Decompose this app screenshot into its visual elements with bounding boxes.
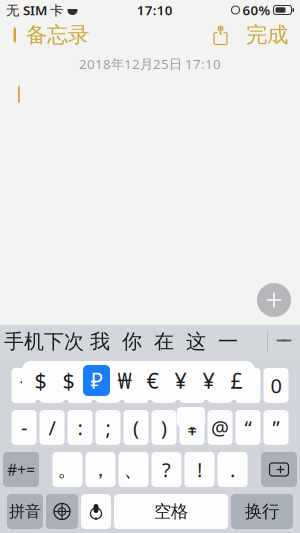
button[interactable]: 你: [116, 325, 148, 358]
button[interactable]: ，: [85, 452, 115, 487]
button[interactable]: (: [123, 410, 148, 445]
button[interactable]: #+=: [3, 452, 39, 487]
staticText: /: [48, 414, 55, 441]
staticText: 3: [74, 372, 85, 399]
staticText: 你: [122, 329, 142, 354]
staticText: 8: [214, 372, 225, 399]
button[interactable]: 完成: [237, 17, 297, 53]
button[interactable]: ₩: [111, 365, 138, 396]
button[interactable]: :: [67, 410, 92, 445]
staticText: ¥: [174, 366, 186, 395]
staticText: ”: [272, 414, 279, 441]
button[interactable]: 一: [212, 325, 244, 358]
button[interactable]: 。: [52, 452, 82, 487]
staticText: ¥: [186, 414, 197, 441]
button[interactable]: €: [139, 365, 166, 396]
staticText: 一: [218, 329, 238, 354]
button[interactable]: 收起候选: [268, 325, 300, 358]
button[interactable]: 删除: [261, 452, 297, 487]
button[interactable]: /: [39, 410, 64, 445]
staticText: ₽: [90, 366, 102, 395]
button[interactable]: 3: [67, 368, 92, 403]
button[interactable]: 新增: [252, 278, 296, 322]
staticText: 完成: [246, 22, 288, 48]
button[interactable]: !: [184, 452, 214, 487]
staticText: 4: [102, 372, 113, 399]
staticText: 这: [186, 329, 206, 354]
button[interactable]: 换行: [231, 494, 293, 529]
button[interactable]: ”: [263, 410, 288, 445]
button[interactable]: 在: [148, 325, 180, 358]
button[interactable]: 手机: [4, 325, 44, 358]
staticText: 。: [57, 457, 77, 482]
button[interactable]: 9: [235, 368, 260, 403]
button[interactable]: $: [55, 365, 82, 396]
button[interactable]: “: [235, 410, 260, 445]
button[interactable]: .: [217, 452, 247, 487]
staticText: ?: [162, 456, 171, 483]
button[interactable]: ¥: [167, 365, 194, 396]
button[interactable]: 空格: [114, 494, 228, 529]
staticText: !: [197, 456, 202, 483]
button[interactable]: ₽: [83, 365, 110, 396]
button[interactable]: 7: [179, 368, 204, 403]
staticText: 2018年12月25日 17:10: [79, 55, 221, 73]
button[interactable]: $: [27, 365, 54, 396]
staticText: €: [146, 366, 158, 395]
button[interactable]: ): [151, 410, 176, 445]
button[interactable]: 0: [263, 368, 288, 403]
button[interactable]: 分享: [204, 22, 237, 48]
button[interactable]: 我: [84, 325, 116, 358]
staticText: :: [77, 414, 82, 441]
staticText: (: [133, 414, 139, 441]
button[interactable]: 这: [180, 325, 212, 358]
button[interactable]: 2: [39, 368, 64, 403]
button[interactable]: 4: [95, 368, 120, 403]
button[interactable]: 5: [123, 368, 148, 403]
staticText: 6: [158, 372, 169, 399]
staticText: ): [161, 414, 167, 441]
staticText: $: [34, 366, 46, 395]
button[interactable]: 8: [207, 368, 232, 403]
staticText: 备忘录: [26, 22, 89, 48]
staticText: £: [230, 366, 242, 395]
button[interactable]: 6: [151, 368, 176, 403]
staticText: 空格: [154, 501, 188, 522]
button[interactable]: -: [11, 410, 36, 445]
staticText: 7: [186, 372, 197, 399]
button[interactable]: 备忘录: [3, 17, 97, 53]
button[interactable]: 、: [118, 452, 148, 487]
button[interactable]: 语音输入: [81, 494, 111, 529]
staticText: 60%: [242, 1, 270, 19]
button[interactable]: 1: [11, 368, 36, 403]
button[interactable]: 拼音: [7, 494, 43, 529]
button[interactable]: ;: [95, 410, 120, 445]
staticText: 5: [130, 372, 141, 399]
staticText: ₩: [117, 366, 131, 395]
button[interactable]: £: [223, 365, 250, 396]
staticText: 我: [90, 329, 110, 354]
staticText: 无 SIM 卡: [6, 1, 63, 19]
button[interactable]: 切换键盘: [46, 494, 78, 529]
staticText: 17:10: [137, 1, 173, 19]
staticText: -: [21, 414, 27, 441]
staticText: 换行: [245, 501, 279, 522]
staticText: ，: [90, 457, 110, 482]
staticText: 拼音: [9, 502, 41, 521]
staticText: .: [230, 456, 235, 483]
staticText: 手机: [4, 329, 44, 354]
staticText: $: [62, 366, 74, 395]
button[interactable]: ¥: [195, 365, 222, 396]
button[interactable]: @: [207, 410, 232, 445]
staticText: 1: [18, 372, 29, 399]
staticText: ¥: [202, 366, 214, 395]
staticText: #+=: [7, 459, 35, 480]
staticText: 、: [123, 457, 143, 482]
staticText: 9: [242, 372, 253, 399]
staticText: “: [244, 414, 251, 441]
staticText: @: [211, 414, 229, 441]
button[interactable]: 下次: [44, 325, 84, 358]
button[interactable]: ¥: [179, 410, 204, 445]
button[interactable]: ?: [151, 452, 181, 487]
